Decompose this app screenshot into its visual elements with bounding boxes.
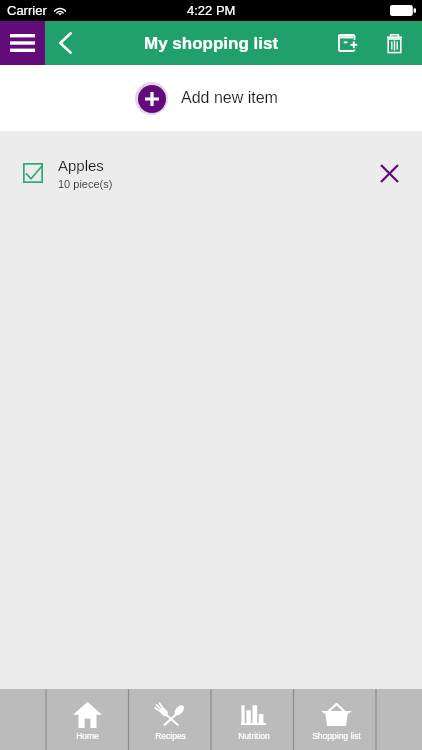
staticText: My shopping list — [144, 34, 279, 53]
button[interactable]: Remove Apples — [362, 131, 416, 215]
button[interactable]: Back — [45, 21, 85, 65]
button[interactable]: Mark Apples as bought — [0, 131, 422, 215]
staticText: Add new item — [181, 89, 278, 107]
staticText: Home — [76, 731, 99, 740]
staticText: Apples — [58, 157, 104, 174]
staticText: Recipes — [155, 731, 186, 740]
button[interactable]: Delete list — [371, 21, 417, 65]
staticText: 4:22 PM — [187, 3, 236, 18]
staticText: 10 piece(s) — [58, 178, 113, 190]
button[interactable]: Shopping list — [295, 689, 378, 750]
button[interactable]: Nutrition — [212, 689, 295, 750]
button[interactable]: Home — [46, 689, 129, 750]
staticText: Nutrition — [238, 731, 270, 740]
button[interactable]: Open navigation menu — [0, 21, 45, 65]
staticText: Carrier — [7, 3, 47, 18]
button[interactable]: Recipes — [129, 689, 212, 750]
staticText: Shopping list — [312, 731, 361, 740]
button[interactable]: Add new item — [0, 65, 422, 131]
button[interactable]: Add note — [324, 21, 371, 65]
button[interactable]: Mark Apples as bought — [0, 131, 58, 215]
